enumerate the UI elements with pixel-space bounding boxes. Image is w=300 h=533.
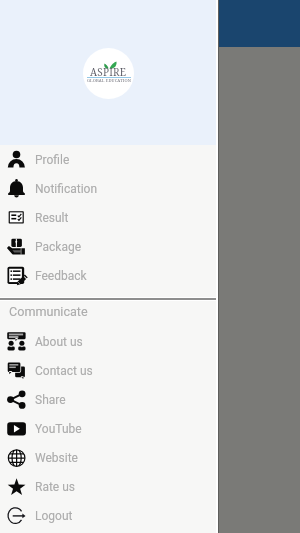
staticText: Share <box>35 393 66 407</box>
button[interactable]: Logout <box>0 501 216 530</box>
staticText: Package <box>35 240 82 254</box>
button[interactable]: Package <box>0 232 216 261</box>
staticText: GLOBAL EDUCATION <box>87 78 131 84</box>
staticText: Contact us <box>35 364 93 378</box>
button[interactable]: Website <box>0 443 216 472</box>
staticText: About us <box>35 335 83 349</box>
button[interactable]: About us <box>0 327 216 356</box>
button[interactable]: Rate us <box>0 472 216 501</box>
button[interactable]: Contact us <box>0 356 216 385</box>
staticText: Result <box>35 211 69 225</box>
staticText: Website <box>35 451 78 465</box>
button[interactable]: Share <box>0 385 216 414</box>
staticText: Profile <box>35 153 70 167</box>
staticText: Communicate <box>9 304 88 319</box>
staticText: Rate us <box>35 480 75 494</box>
staticText: Logout <box>35 509 73 523</box>
staticText: Notification <box>35 182 98 196</box>
staticText: ASPIRE <box>90 65 127 79</box>
staticText: YouTube <box>35 422 82 436</box>
button[interactable]: Result <box>0 203 216 232</box>
button[interactable]: Feedback <box>0 261 216 290</box>
button[interactable]: Notification <box>0 174 216 203</box>
button[interactable]: Profile <box>0 145 216 174</box>
button[interactable]: YouTube <box>0 414 216 443</box>
staticText: Feedback <box>35 269 87 283</box>
